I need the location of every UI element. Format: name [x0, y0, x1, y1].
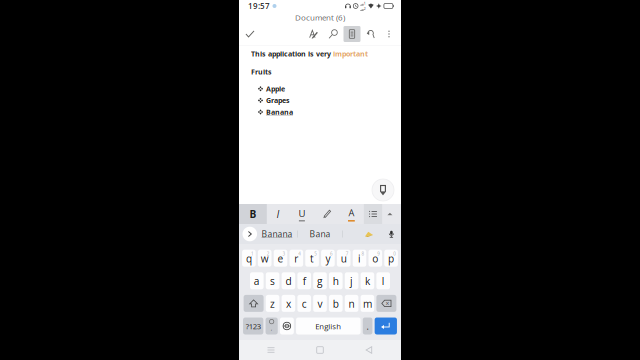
button[interactable]: Hide toolbar: [382, 204, 398, 224]
staticText: u: [341, 252, 347, 265]
button[interactable]: Recent apps: [254, 340, 288, 360]
button[interactable]: Search: [323, 23, 342, 45]
button[interactable]: Backspace: [376, 295, 396, 312]
staticText: a: [254, 274, 260, 288]
button[interactable]: Banana: [261, 224, 293, 244]
button[interactable]: u: [337, 250, 350, 267]
button[interactable]: v: [313, 295, 327, 312]
staticText: 5: [314, 251, 317, 257]
staticText: important: [333, 49, 368, 59]
button[interactable]: x: [282, 295, 295, 312]
staticText: ?123: [246, 321, 261, 331]
button[interactable]: Mobile view: [342, 23, 361, 45]
staticText: j: [350, 274, 353, 288]
button[interactable]: t: [305, 250, 319, 267]
staticText: Grapes: [266, 96, 290, 105]
button[interactable]: f: [297, 272, 311, 289]
button[interactable]: n: [345, 295, 358, 312]
staticText: i: [358, 252, 361, 265]
button[interactable]: o: [368, 250, 382, 267]
button[interactable]: Emoji: [266, 317, 278, 334]
staticText: t: [310, 252, 314, 265]
button[interactable]: Ink tools: [372, 179, 394, 201]
staticText: 3: [282, 251, 285, 257]
button[interactable]: Undo: [361, 23, 380, 45]
staticText: 7: [346, 251, 349, 257]
staticText: U: [298, 207, 305, 220]
button[interactable]: More options: [380, 23, 397, 45]
button[interactable]: i: [353, 250, 366, 267]
button[interactable]: Enter: [375, 317, 397, 334]
button[interactable]: Change language: [280, 317, 294, 334]
button[interactable]: English: [296, 317, 361, 334]
staticText: Document (6): [295, 12, 345, 23]
button[interactable]: Highlight: [315, 204, 339, 224]
button[interactable]: Home: [303, 340, 337, 360]
button[interactable]: Font colour: [339, 204, 364, 224]
staticText: 6: [330, 251, 333, 257]
staticText: I: [276, 207, 279, 221]
staticText: 2: [267, 251, 270, 257]
staticText: ×: [385, 299, 389, 308]
button[interactable]: B: [239, 204, 267, 224]
staticText: 9: [377, 251, 380, 257]
button[interactable]: Bulleted list: [364, 204, 382, 224]
staticText: Banana: [266, 107, 293, 117]
staticText: 4: [298, 251, 301, 257]
button[interactable]: d: [282, 272, 295, 289]
button[interactable]: m: [361, 295, 374, 312]
button[interactable]: U: [289, 204, 315, 224]
staticText: 1: [364, 1, 366, 6]
staticText: Banana: [261, 228, 292, 240]
staticText: c: [302, 297, 307, 311]
button[interactable]: Shift: [244, 295, 264, 312]
staticText: b: [333, 297, 339, 311]
button[interactable]: j: [345, 272, 358, 289]
button[interactable]: More suggestions: [239, 224, 261, 244]
button[interactable]: b: [329, 295, 343, 312]
button[interactable]: r: [289, 250, 303, 267]
button[interactable]: Voice typing: [382, 224, 401, 244]
staticText: 1: [251, 251, 254, 257]
staticText: f: [303, 274, 306, 288]
button[interactable]: y: [321, 250, 335, 267]
button[interactable]: w: [258, 250, 271, 267]
staticText: d: [285, 274, 291, 288]
staticText: A: [348, 206, 354, 219]
staticText: g: [317, 274, 323, 288]
button[interactable]: .: [363, 317, 372, 334]
staticText: l: [382, 274, 385, 288]
button[interactable]: Done: [239, 23, 265, 45]
staticText: 19:57: [248, 1, 270, 11]
staticText: B: [249, 207, 256, 221]
button[interactable]: l: [376, 272, 390, 289]
button[interactable]: Bana: [298, 224, 342, 244]
staticText: x: [286, 297, 291, 311]
button[interactable]: g: [313, 272, 327, 289]
button[interactable]: Stickers: [343, 224, 382, 244]
button[interactable]: Back: [352, 340, 386, 360]
button[interactable]: c: [297, 295, 311, 312]
staticText: 0: [393, 251, 396, 257]
button[interactable]: ?123: [243, 317, 263, 334]
staticText: English: [315, 321, 341, 331]
staticText: v: [317, 297, 322, 311]
button[interactable]: I: [267, 204, 289, 224]
button[interactable]: k: [361, 272, 374, 289]
staticText: h: [333, 274, 339, 288]
staticText: o: [372, 252, 378, 265]
button[interactable]: a: [250, 272, 264, 289]
staticText: Fruits: [251, 67, 272, 76]
staticText: s: [270, 274, 275, 288]
button[interactable]: Format text: [304, 23, 323, 45]
staticText: y: [325, 252, 330, 265]
button[interactable]: e: [274, 250, 287, 267]
staticText: n: [349, 297, 355, 311]
button[interactable]: h: [329, 272, 343, 289]
staticText: This application is very: [251, 49, 333, 59]
button[interactable]: p: [384, 250, 398, 267]
staticText: k: [365, 274, 370, 288]
button[interactable]: s: [266, 272, 279, 289]
button[interactable]: q: [242, 250, 256, 267]
button[interactable]: z: [266, 295, 279, 312]
